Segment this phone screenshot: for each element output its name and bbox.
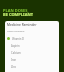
staticText: BE COMPLIANT xyxy=(3,12,33,17)
button[interactable]: Iron xyxy=(7,56,59,63)
staticText: Aspirin xyxy=(11,44,20,48)
staticText: PLAN DOSES, xyxy=(3,8,29,13)
staticText: Today schedule xyxy=(7,29,25,32)
button[interactable]: Zinc xyxy=(7,63,59,70)
staticText: Medicine Reminder xyxy=(7,23,37,27)
button[interactable]: Calcium xyxy=(7,49,59,56)
staticText: Iron xyxy=(11,58,17,62)
button[interactable]: Vitamin D xyxy=(7,35,59,42)
staticText: Zinc xyxy=(11,65,17,69)
staticText: Calcium xyxy=(11,51,21,55)
staticText: Vitamin D xyxy=(12,37,24,41)
button[interactable]: Aspirin xyxy=(7,42,59,49)
